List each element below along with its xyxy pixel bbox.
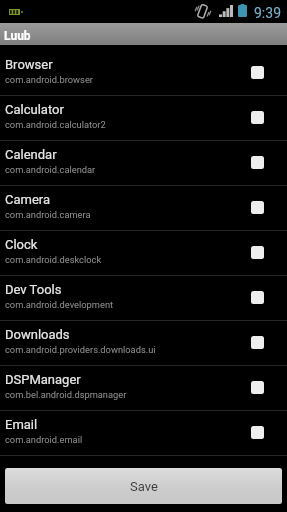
staticText: com.bel.android.dspmanager bbox=[5, 389, 127, 400]
button[interactable]: Toggle Calculator bbox=[251, 111, 264, 124]
staticText: com.android.browser bbox=[5, 74, 93, 85]
staticText: 9:39 bbox=[254, 5, 281, 21]
staticText: Downloads bbox=[5, 327, 70, 342]
button[interactable]: Save bbox=[5, 468, 282, 504]
button[interactable]: Downloads bbox=[0, 320, 287, 365]
button[interactable]: Calendar bbox=[0, 140, 287, 185]
button[interactable]: Toggle Calendar bbox=[251, 156, 264, 169]
button[interactable]: Dev Tools bbox=[0, 275, 287, 320]
button[interactable]: Toggle Dev Tools bbox=[251, 291, 264, 304]
button[interactable]: Toggle Clock bbox=[251, 246, 264, 259]
staticText: Camera bbox=[5, 192, 51, 207]
button[interactable]: Camera bbox=[0, 185, 287, 230]
button[interactable]: Toggle Downloads bbox=[251, 336, 264, 349]
staticText: com.android.deskclock bbox=[5, 254, 102, 265]
staticText: com.android.providers.downloads.ui bbox=[5, 344, 156, 355]
staticText: DSPManager bbox=[5, 372, 81, 387]
button[interactable]: Toggle Email bbox=[251, 426, 264, 439]
button[interactable]: Calculator bbox=[0, 95, 287, 140]
button[interactable]: Toggle DSPManager bbox=[251, 381, 264, 394]
other: Vibrate mode bbox=[193, 3, 212, 19]
button[interactable]: Luub bbox=[0, 23, 287, 45]
button[interactable]: Browser bbox=[0, 50, 287, 95]
staticText: Luub bbox=[4, 29, 31, 43]
staticText: Browser bbox=[5, 57, 53, 72]
staticText: Dev Tools bbox=[5, 282, 62, 297]
other: Signal strength bbox=[219, 5, 233, 17]
staticText: com.android.calendar bbox=[5, 164, 96, 175]
button[interactable]: Toggle Camera bbox=[251, 201, 264, 214]
button[interactable]: DSPManager bbox=[0, 365, 287, 410]
staticText: Calculator bbox=[5, 102, 64, 117]
button[interactable]: Email bbox=[0, 410, 287, 455]
button[interactable]: Toggle Browser bbox=[251, 66, 264, 79]
staticText: Clock bbox=[5, 237, 38, 252]
button[interactable]: Clock bbox=[0, 230, 287, 275]
staticText: Email bbox=[5, 417, 38, 432]
staticText: com.android.calculator2 bbox=[5, 119, 106, 130]
staticText: Calendar bbox=[5, 147, 57, 162]
staticText: Save bbox=[130, 479, 158, 494]
other: Battery bbox=[238, 4, 247, 18]
staticText: com.android.email bbox=[5, 434, 83, 445]
staticText: com.android.camera bbox=[5, 209, 91, 220]
staticText: com.android.development bbox=[5, 299, 114, 310]
